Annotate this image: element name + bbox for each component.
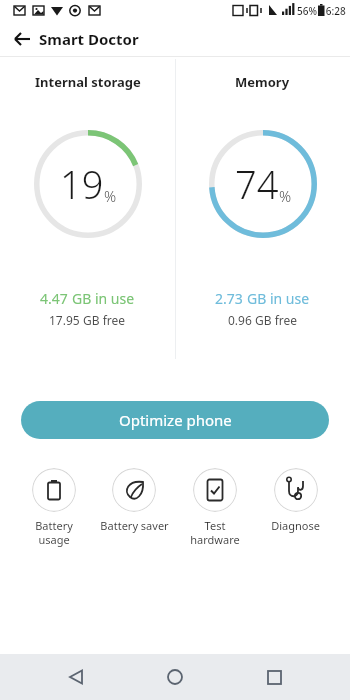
button[interactable]: Back [53, 654, 99, 700]
staticText: Test hardware [190, 518, 240, 547]
staticText: 19 [60, 158, 104, 210]
button[interactable]: Recent apps [251, 654, 297, 700]
staticText: GB free [83, 312, 126, 328]
staticText: Internal storage [35, 73, 141, 91]
staticText: Smart Doctor [39, 29, 139, 49]
staticText: Memory [235, 73, 290, 91]
staticText: GB free [255, 312, 298, 328]
button[interactable]: Diagnose [255, 466, 336, 535]
staticText: % [104, 186, 117, 206]
staticText: 56% [297, 4, 317, 18]
button[interactable]: Home [152, 654, 198, 700]
button[interactable]: Test hardware [174, 466, 255, 549]
button[interactable]: Back [9, 26, 35, 52]
staticText: Battery saver [100, 518, 169, 533]
button[interactable]: Battery saver [94, 466, 174, 535]
staticText: Optimize phone [119, 410, 232, 430]
staticText: 16:28 [320, 4, 346, 18]
staticText: 0.96 [228, 312, 252, 328]
staticText: 74 [235, 158, 279, 210]
staticText: GB in use [72, 289, 135, 308]
staticText: % [279, 186, 292, 206]
staticText: 17.95 [49, 312, 80, 328]
staticText: 2.73 [215, 289, 243, 308]
button[interactable]: Optimize phone [21, 401, 329, 439]
staticText: 4.47 [40, 289, 68, 308]
button[interactable]: Battery usage [14, 466, 94, 549]
staticText: GB in use [247, 289, 310, 308]
staticText: Diagnose [271, 518, 320, 533]
staticText: Battery usage [35, 518, 73, 547]
